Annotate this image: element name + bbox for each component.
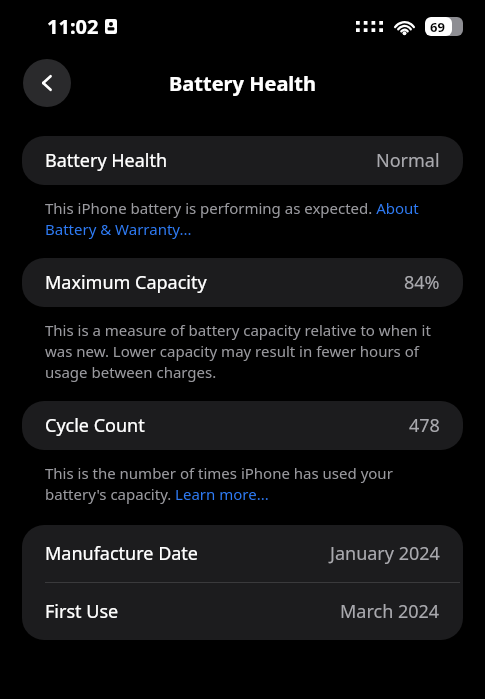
- staticText: 478: [409, 413, 440, 438]
- staticText: This is a measure of battery capacity re…: [45, 320, 445, 383]
- staticText: Cycle Count: [45, 413, 145, 438]
- staticText: First Use: [45, 599, 119, 624]
- staticText: January 2024: [330, 541, 440, 566]
- staticText: Maximum Capacity: [45, 270, 207, 295]
- staticText: 84%: [404, 270, 440, 295]
- button[interactable]: Manufacture Date: [22, 525, 463, 582]
- staticText: 11:02: [47, 13, 99, 40]
- button[interactable]: First Use: [22, 583, 463, 640]
- staticText: March 2024: [340, 599, 440, 624]
- button[interactable]: Maximum Capacity: [22, 258, 463, 307]
- button[interactable]: Back: [23, 59, 71, 107]
- staticText: Normal: [376, 148, 440, 173]
- staticText: 69: [430, 18, 445, 36]
- staticText: This is the number of times iPhone has u…: [45, 463, 445, 505]
- button[interactable]: Cycle Count: [22, 401, 463, 450]
- staticText: Battery Health: [169, 70, 316, 97]
- button[interactable]: Battery Health: [22, 136, 463, 185]
- staticText: This iPhone battery is performing as exp…: [45, 198, 445, 240]
- staticText: Manufacture Date: [45, 541, 199, 566]
- staticText: Battery Health: [45, 148, 168, 173]
